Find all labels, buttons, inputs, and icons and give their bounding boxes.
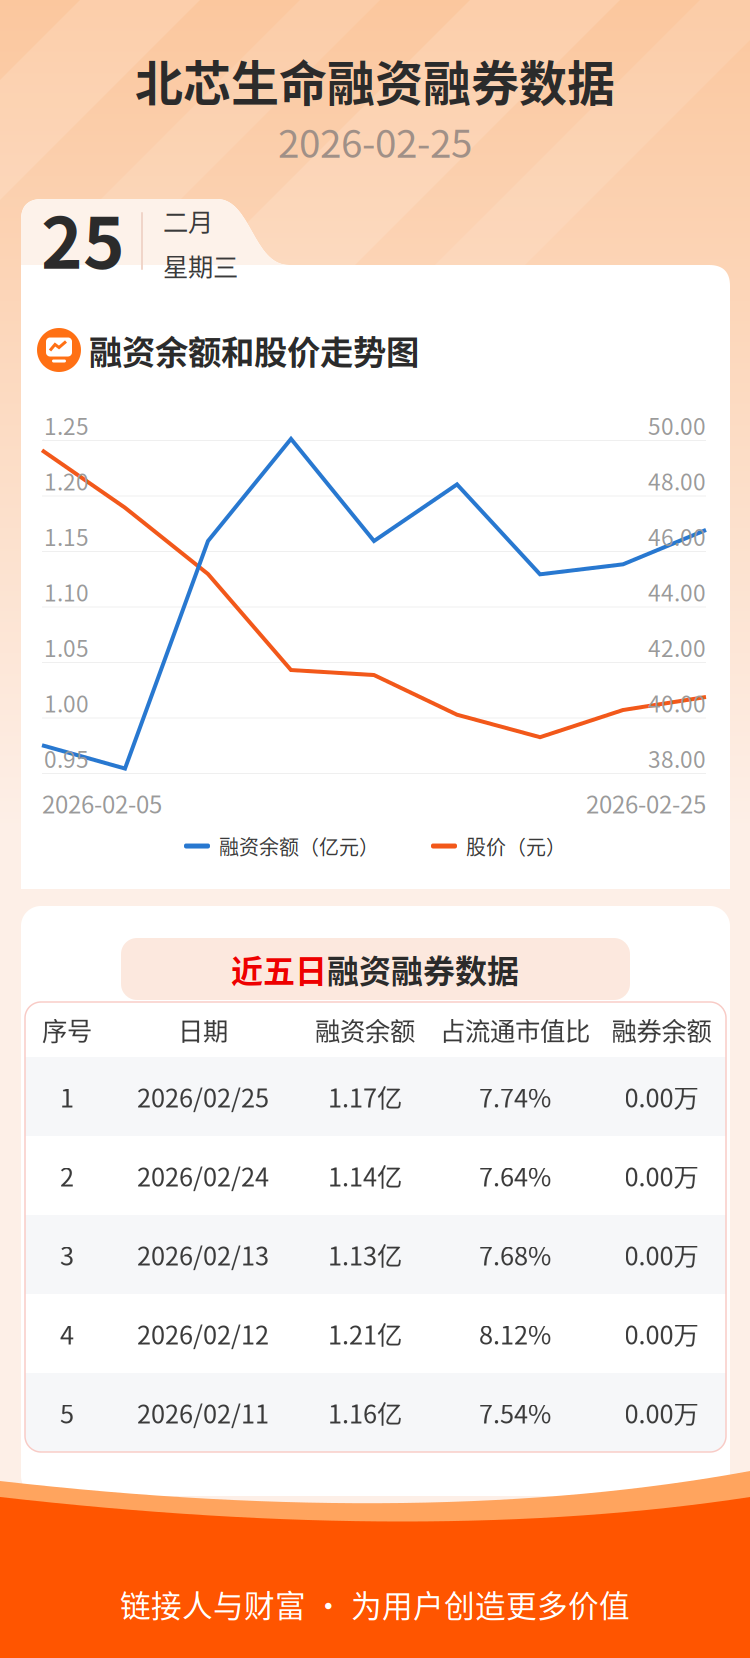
staticText: 1.25: [44, 409, 89, 441]
staticText: 2026-02-25: [586, 786, 706, 820]
staticText: 4: [60, 1315, 74, 1352]
staticText: 融资余额: [315, 1011, 415, 1048]
staticText: 5: [60, 1394, 74, 1431]
staticText: 1.17亿: [328, 1078, 402, 1115]
staticText: 股价（元）: [466, 831, 566, 860]
staticText: 融资余额（亿元）: [219, 831, 379, 860]
staticText: 2026/02/12: [137, 1315, 269, 1352]
staticText: 融资余额和股价走势图: [89, 326, 419, 374]
staticText: 星期三: [163, 247, 238, 284]
staticText: 1.05: [44, 631, 89, 663]
staticText: 1.21亿: [328, 1315, 402, 1352]
staticText: 1.10: [44, 575, 89, 608]
staticText: 38.00: [648, 742, 706, 774]
staticText: 近五日: [231, 946, 327, 992]
staticText: 7.74%: [479, 1078, 551, 1115]
staticText: 1.00: [44, 686, 89, 719]
staticText: 二月: [163, 202, 213, 239]
staticText: 48.00: [648, 464, 706, 497]
staticText: 1.15: [44, 520, 89, 552]
staticText: 1: [60, 1078, 74, 1115]
staticText: 0.00万: [624, 1315, 698, 1352]
staticText: 2026-02-05: [42, 786, 162, 820]
staticText: 0.00万: [624, 1078, 698, 1115]
staticText: 46.00: [648, 520, 706, 552]
staticText: 7.64%: [479, 1157, 551, 1194]
staticText: 2: [60, 1157, 74, 1194]
staticText: 44.00: [648, 575, 706, 608]
staticText: 链接人与财富 · 为用户创造更多价值: [120, 1582, 630, 1626]
staticText: 占流通市值比: [440, 1011, 590, 1048]
staticText: 0.95: [44, 742, 89, 774]
staticText: 2026/02/25: [137, 1078, 269, 1115]
staticText: 0.00万: [624, 1236, 698, 1273]
staticText: 42.00: [648, 631, 706, 663]
staticText: 1.16亿: [328, 1394, 402, 1431]
staticText: 7.68%: [479, 1236, 551, 1273]
staticText: 2026/02/11: [137, 1394, 269, 1431]
staticText: 2026/02/24: [137, 1157, 269, 1194]
staticText: 1.13亿: [328, 1236, 402, 1273]
staticText: 2026-02-25: [278, 113, 472, 169]
staticText: 50.00: [648, 409, 706, 441]
staticText: 7.54%: [479, 1394, 551, 1431]
staticText: 北芯生命融资融券数据: [135, 45, 615, 115]
staticText: 序号: [42, 1011, 92, 1048]
staticText: 8.12%: [479, 1315, 551, 1352]
staticText: 3: [60, 1236, 74, 1273]
staticText: 融资融券数据: [327, 946, 519, 992]
staticText: 日期: [178, 1011, 228, 1048]
staticText: 1.20: [44, 464, 89, 497]
staticText: 0.00万: [624, 1157, 698, 1194]
staticText: 0.00万: [624, 1394, 698, 1431]
staticText: 25: [41, 187, 125, 289]
staticText: 融券余额: [611, 1011, 711, 1048]
staticText: 1.14亿: [328, 1157, 402, 1194]
staticText: 2026/02/13: [137, 1236, 269, 1273]
staticText: 40.00: [648, 686, 706, 719]
